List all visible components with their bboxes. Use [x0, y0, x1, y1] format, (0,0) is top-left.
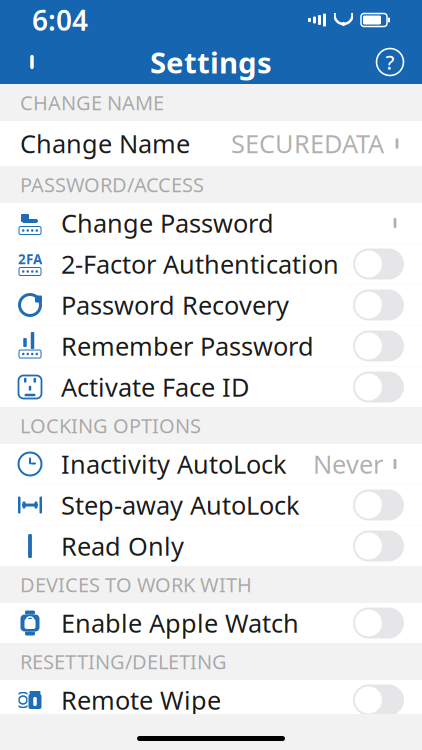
staticText: ? [385, 49, 394, 75]
button[interactable]: Remember Password [0, 326, 422, 366]
staticText: Change Password [61, 206, 274, 240]
button[interactable]: Password Recovery [0, 285, 422, 325]
staticText: 2FA [18, 250, 42, 268]
staticText: 6:04 [32, 1, 88, 39]
staticText: Never [313, 447, 383, 481]
staticText: SECUREDATA [231, 127, 384, 160]
button[interactable]: Read Only [0, 526, 422, 566]
button[interactable]: Enable Apple Watch [0, 603, 422, 643]
staticText: CHANGE NAME [20, 89, 164, 116]
staticText: Remote Wipe [61, 683, 221, 717]
staticText: 2-Factor Authentication [61, 247, 339, 281]
staticText: Change Name [20, 127, 190, 160]
staticText: Enable Apple Watch [61, 606, 299, 640]
button[interactable]: Change Password [0, 203, 422, 243]
staticText: Inactivity AutoLock [61, 447, 287, 481]
staticText: Remember Password [61, 329, 314, 363]
staticText: Password Recovery [61, 288, 289, 322]
button[interactable]: Activate Face ID [0, 367, 422, 407]
staticText: Step-away AutoLock [61, 488, 300, 522]
staticText: Settings [150, 42, 272, 81]
staticText: DEVICES TO WORK WITH [20, 571, 252, 598]
button[interactable]: Help [364, 40, 416, 84]
staticText: Read Only [61, 529, 184, 563]
staticText: RESETTING/DELETING [20, 648, 227, 675]
button[interactable]: 2FA [0, 244, 422, 284]
staticText: PASSWORD/ACCESS [20, 171, 204, 198]
staticText: LOCKING OPTIONS [20, 412, 201, 439]
button[interactable]: Step-away AutoLock [0, 485, 422, 525]
button[interactable]: Remote Wipe [0, 680, 422, 720]
button[interactable]: Change Name [0, 121, 422, 166]
staticText: Activate Face ID [61, 370, 249, 404]
button[interactable]: Back [6, 40, 58, 84]
button[interactable]: Inactivity AutoLock [0, 444, 422, 484]
